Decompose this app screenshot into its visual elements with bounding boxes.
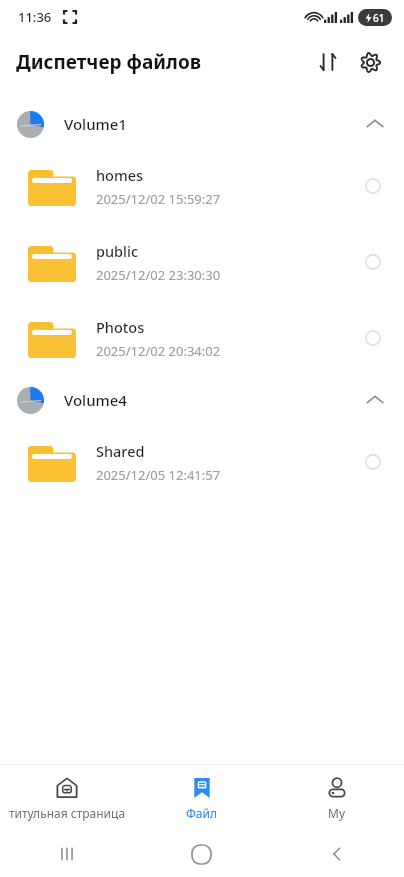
button[interactable]: Volume4 (0, 376, 404, 424)
staticText: Диспетчер файлов (16, 49, 202, 75)
staticText: 61 (373, 11, 385, 25)
button[interactable]: Select homes (351, 164, 395, 208)
staticText: homes (96, 165, 144, 185)
button[interactable]: public (0, 224, 404, 300)
staticText: титульная страница (9, 805, 126, 821)
button[interactable]: homes (0, 148, 404, 224)
button[interactable]: Файл (134, 776, 269, 821)
button[interactable]: Select Photos (351, 316, 395, 360)
staticText: Photos (96, 317, 145, 337)
button[interactable]: Sort (308, 42, 348, 82)
button[interactable]: My (269, 776, 404, 821)
button[interactable]: Back (269, 831, 404, 877)
button[interactable]: титульная страница (0, 776, 134, 821)
button[interactable]: Home (134, 831, 269, 877)
staticText: public (96, 241, 139, 261)
staticText: 11:36 (18, 8, 52, 26)
staticText: My (328, 805, 346, 821)
staticText: 2025/12/02 20:34:02 (96, 342, 221, 360)
button[interactable]: Photos (0, 300, 404, 376)
button[interactable]: Volume1 (0, 100, 404, 148)
button[interactable]: Select public (351, 240, 395, 284)
staticText: 2025/12/02 23:30:30 (96, 266, 221, 284)
staticText: Shared (96, 441, 145, 461)
staticText: Volume1 (64, 114, 127, 134)
staticText: 2025/12/05 12:41:57 (96, 466, 221, 484)
button[interactable]: Settings (350, 42, 390, 82)
button[interactable]: Shared (0, 424, 404, 500)
staticText: Файл (186, 805, 217, 821)
button[interactable]: Select Shared (351, 440, 395, 484)
button[interactable]: Recents (0, 831, 134, 877)
staticText: Volume4 (64, 390, 127, 410)
staticText: 2025/12/02 15:59:27 (96, 190, 221, 208)
